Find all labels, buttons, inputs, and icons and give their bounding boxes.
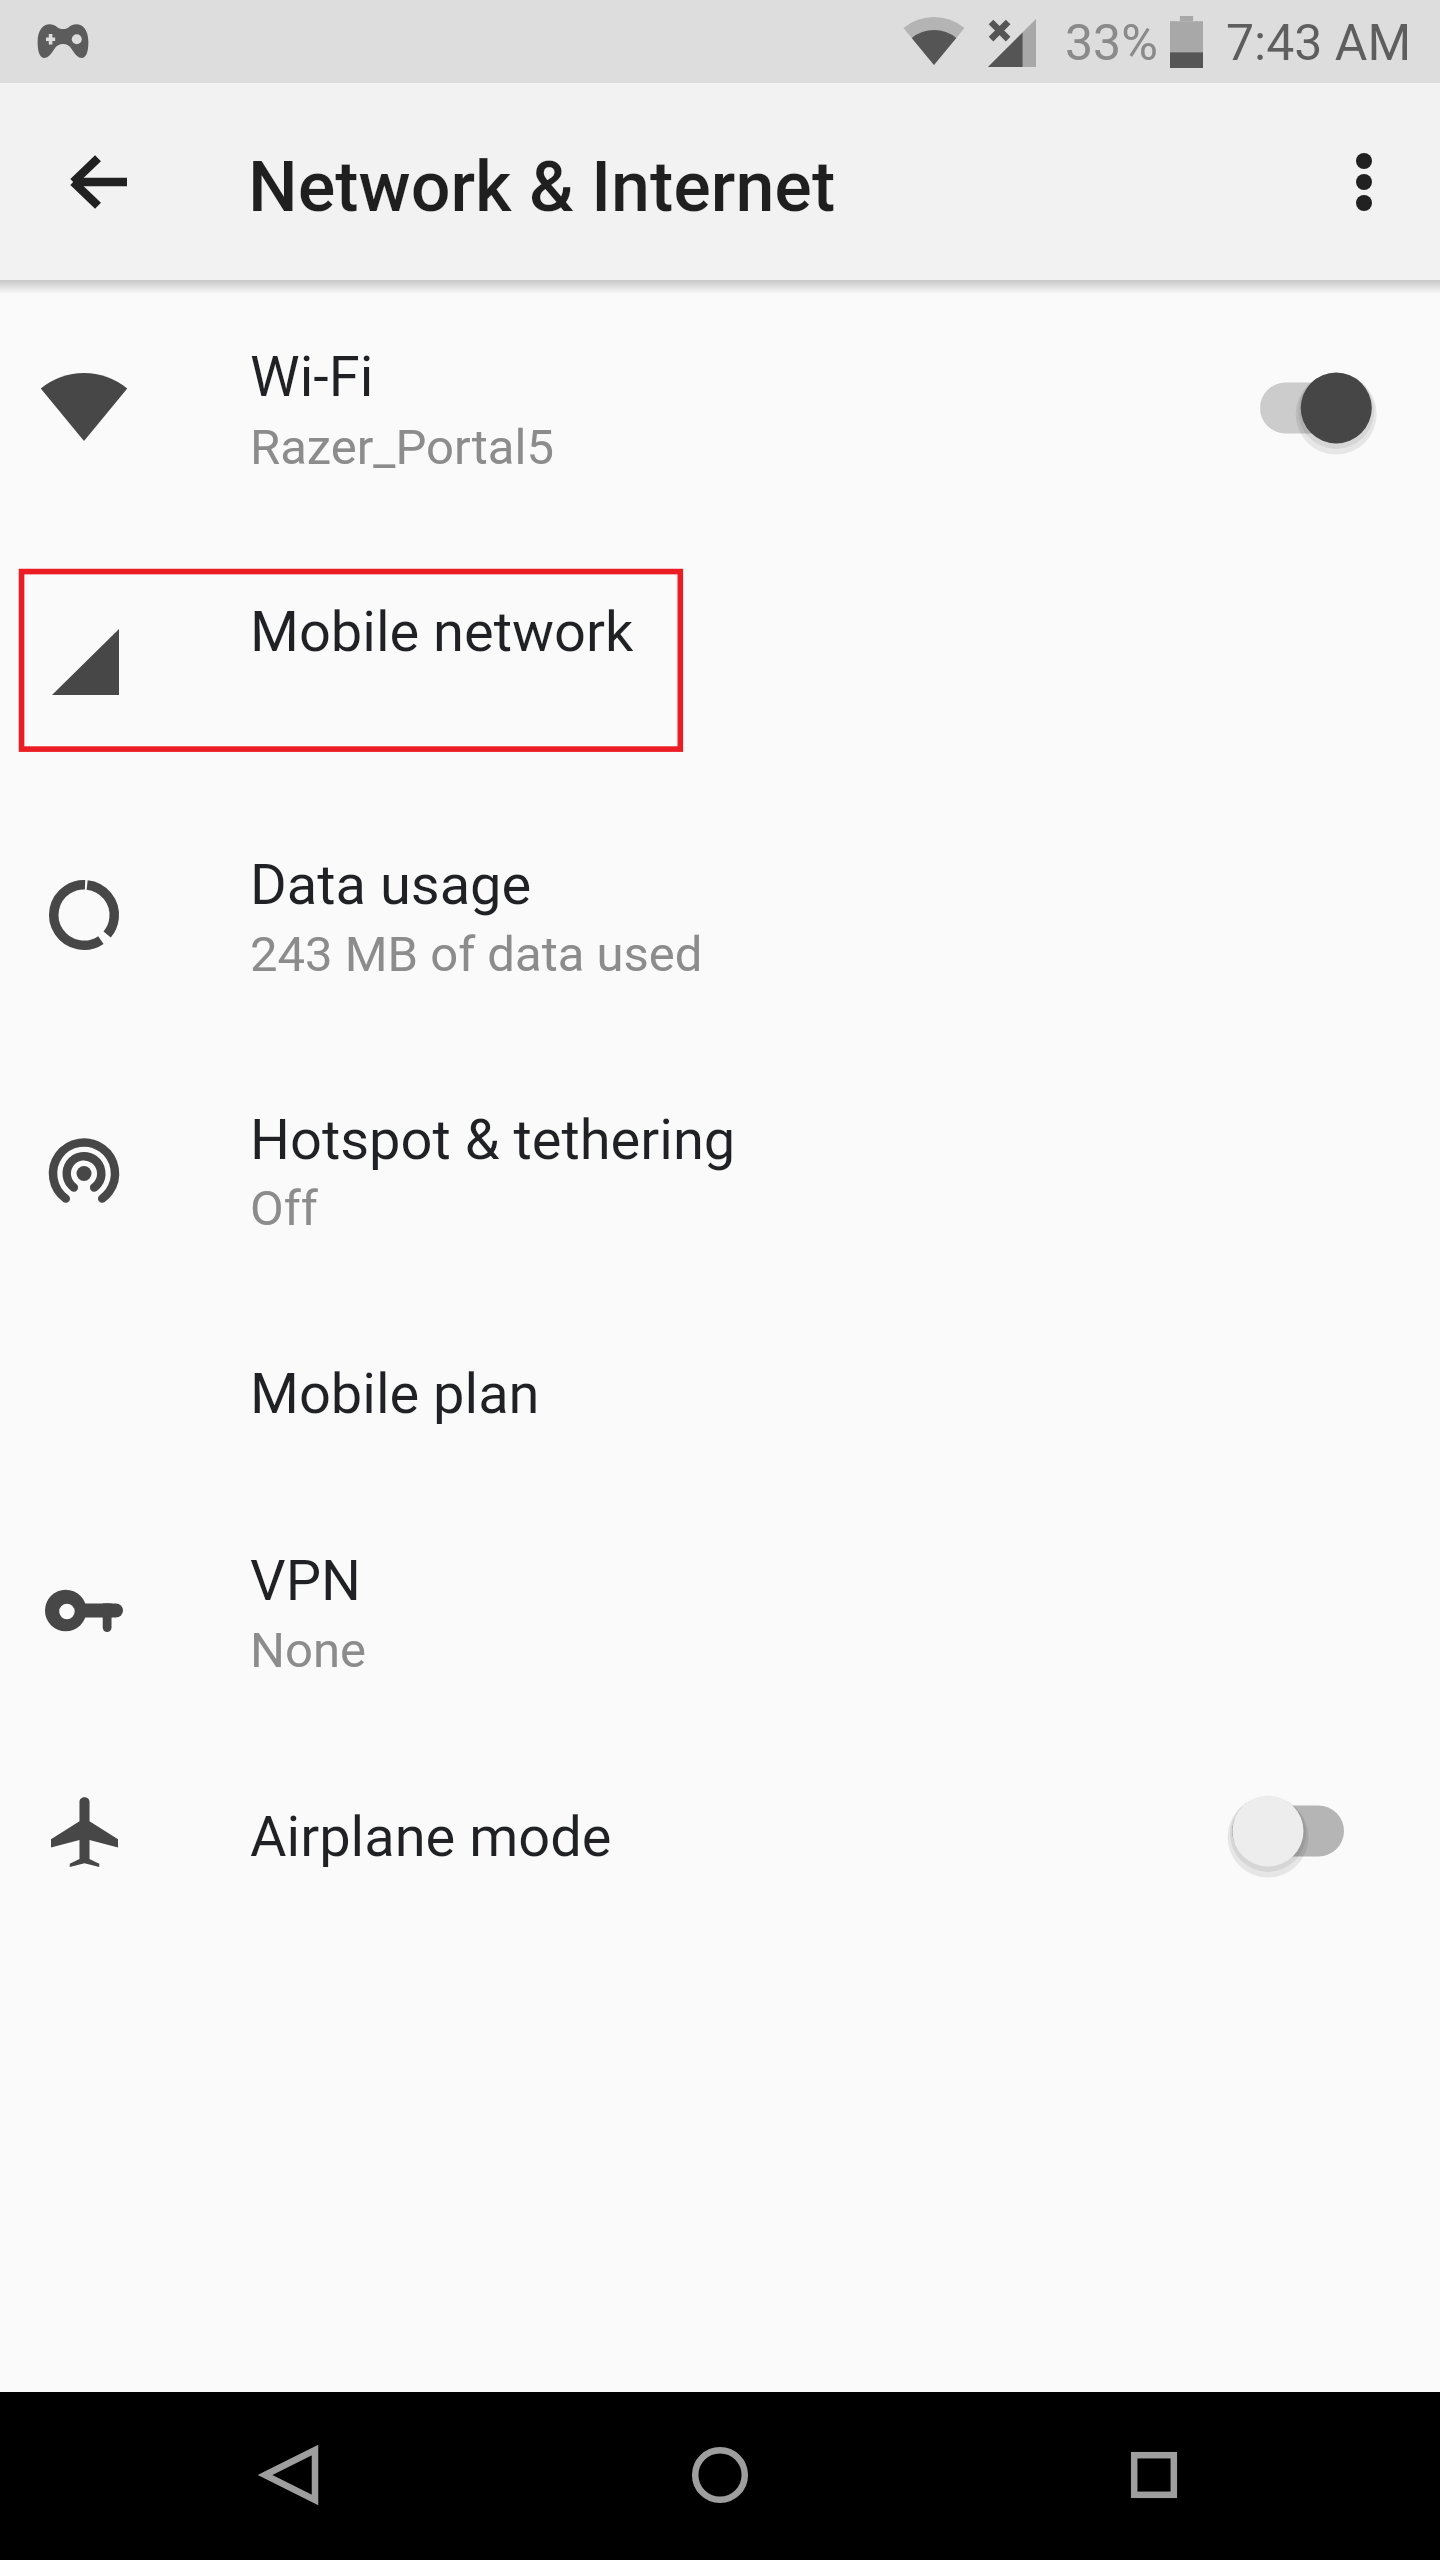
staticText: VPN xyxy=(250,1548,361,1614)
staticText: 243 MB of data used xyxy=(250,926,703,983)
button[interactable]: Wi-Fi xyxy=(0,292,1440,547)
staticText: Wi-Fi xyxy=(250,344,374,410)
button[interactable]: Recent apps xyxy=(1098,2419,1210,2531)
button[interactable]: Hotspot & tethering xyxy=(0,1055,1440,1310)
staticText: Hotspot & tethering xyxy=(250,1107,736,1173)
button[interactable]: Airplane mode switch xyxy=(1207,1771,1369,1891)
button[interactable]: Mobile plan xyxy=(0,1310,1440,1496)
button[interactable]: Mobile network xyxy=(0,547,1440,800)
button[interactable]: Navigate up xyxy=(42,126,154,238)
staticText: Network & Internet xyxy=(248,146,836,228)
button[interactable]: Wi-Fi switch xyxy=(1235,348,1397,468)
staticText: Off xyxy=(250,1180,318,1237)
button[interactable]: More options xyxy=(1308,126,1420,238)
staticText: Mobile network xyxy=(250,599,634,665)
staticText: 33% xyxy=(1065,14,1158,73)
button[interactable]: VPN xyxy=(0,1496,1440,1751)
staticText: None xyxy=(250,1622,366,1679)
staticText: Razer_Portal5 xyxy=(250,419,554,476)
staticText: Mobile plan xyxy=(250,1361,540,1427)
button[interactable]: Airplane mode xyxy=(0,1751,1440,1937)
button[interactable]: Home xyxy=(664,2419,776,2531)
button[interactable]: Back xyxy=(234,2419,346,2531)
staticText: 7:43 AM xyxy=(1226,14,1412,73)
staticText: Data usage xyxy=(250,852,532,918)
staticText: Airplane mode xyxy=(250,1804,612,1870)
button[interactable]: Data usage xyxy=(0,800,1440,1055)
